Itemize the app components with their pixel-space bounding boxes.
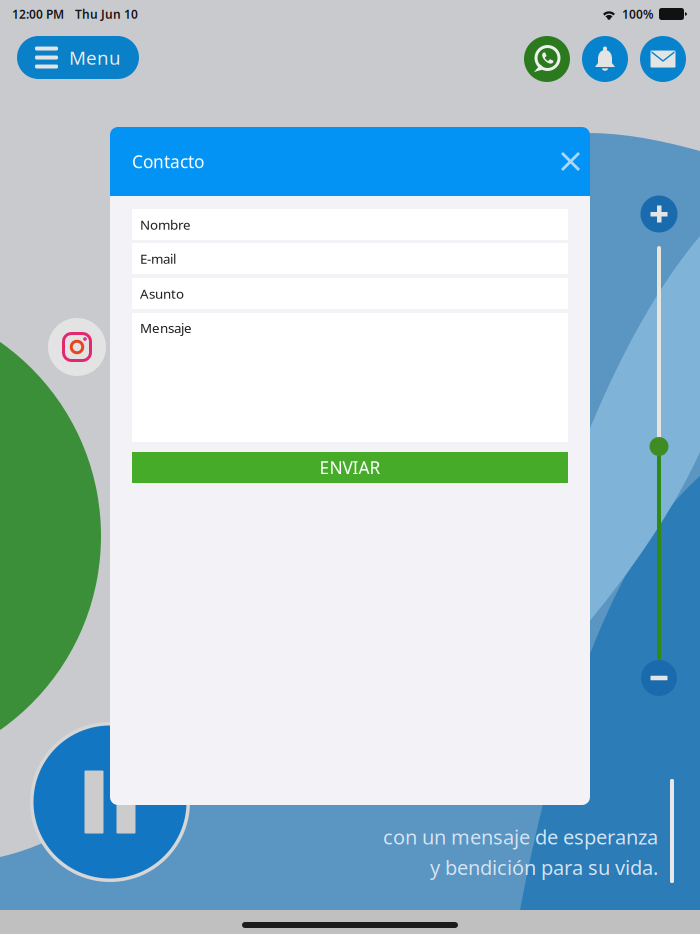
button[interactable]: Volume up (639, 194, 679, 234)
staticText: con un mensaje de esperanza (383, 823, 658, 850)
button[interactable]: WhatsApp (524, 36, 570, 82)
staticText: 12:00 PM (12, 6, 64, 22)
staticText: Thu Jun 10 (75, 6, 138, 22)
button[interactable]: Email (640, 36, 686, 82)
staticText: Mensaje (140, 319, 192, 337)
staticText: E-mail (140, 250, 176, 267)
button[interactable]: Notifications (582, 36, 628, 82)
button[interactable]: Menu (17, 36, 139, 79)
staticText: Menu (69, 45, 121, 70)
staticText: y bendición para su vida. (430, 854, 658, 881)
button[interactable]: Play (30, 722, 190, 882)
staticText: 100% (622, 6, 654, 22)
staticText: Nombre (140, 216, 191, 233)
button[interactable]: ENVIAR (132, 452, 568, 483)
staticText: ENVIAR (319, 456, 380, 479)
staticText: Contacto (132, 150, 204, 173)
button[interactable]: Volume down (639, 658, 679, 698)
button[interactable]: Close (551, 142, 590, 181)
button[interactable]: Instagram (48, 318, 106, 376)
staticText: Asunto (140, 285, 184, 302)
